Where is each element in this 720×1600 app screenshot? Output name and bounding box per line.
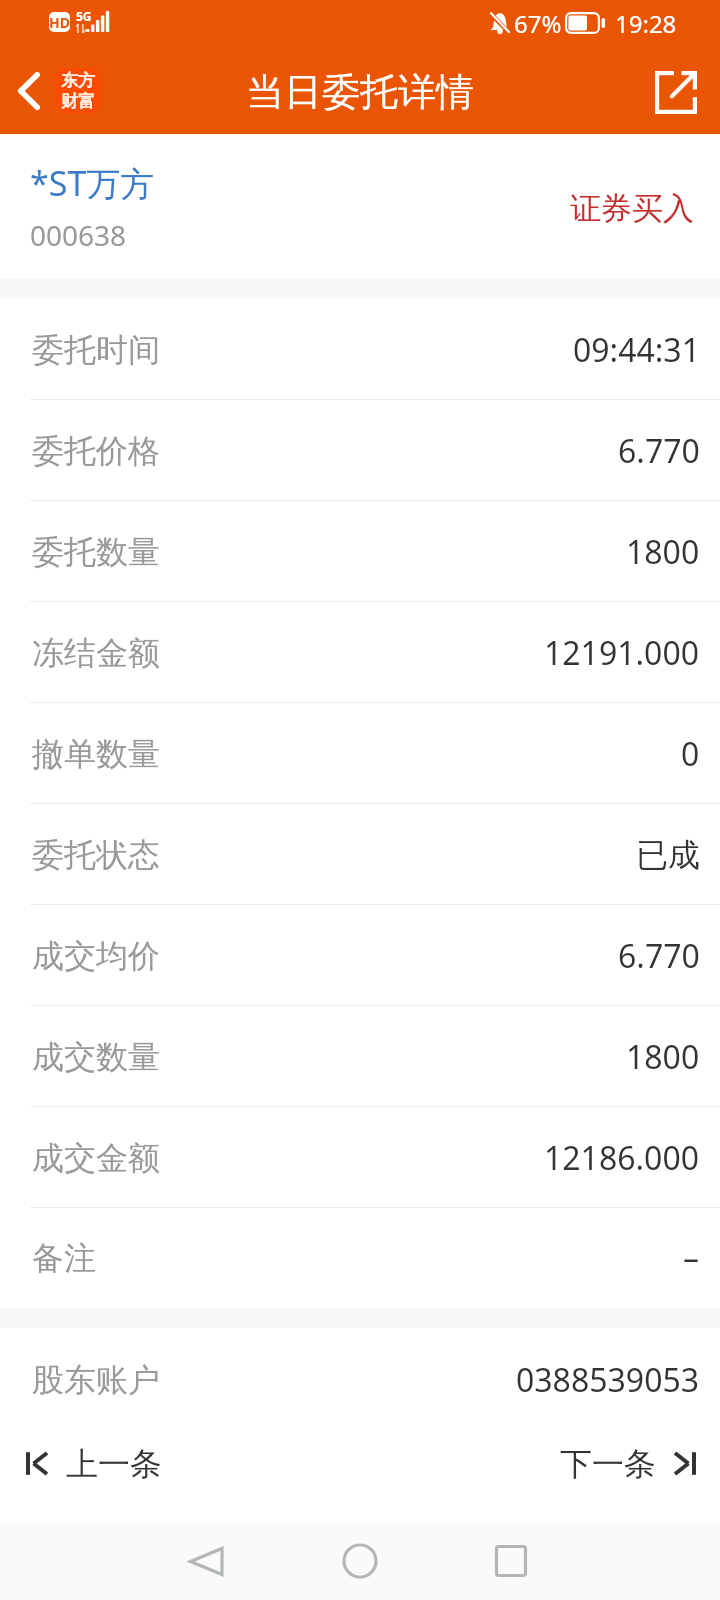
- button[interactable]: 委托价格: [0, 400, 720, 501]
- staticText: 成交数量: [32, 1037, 160, 1077]
- staticText: 6.770: [618, 429, 700, 473]
- staticText: 冻结金额: [32, 633, 160, 673]
- button[interactable]: 股东账户: [0, 1328, 720, 1432]
- staticText: 12186.000: [544, 1136, 700, 1180]
- staticText: 1800: [626, 1035, 700, 1079]
- button[interactable]: 委托数量: [0, 501, 720, 602]
- button[interactable]: *ST万方: [30, 160, 155, 206]
- button[interactable]: 证券买入: [570, 189, 694, 228]
- staticText: 12191.000: [544, 631, 700, 675]
- staticText: 6.770: [618, 934, 700, 978]
- button[interactable]: 委托状态: [0, 804, 720, 905]
- staticText: 成交金额: [32, 1138, 160, 1178]
- staticText: 19:28: [615, 7, 677, 40]
- staticText: 备注: [32, 1238, 96, 1278]
- button[interactable]: 成交金额: [0, 1107, 720, 1208]
- staticText: 委托时间: [32, 330, 160, 370]
- button[interactable]: 成交均价: [0, 905, 720, 1006]
- button[interactable]: 成交数量: [0, 1006, 720, 1107]
- staticText: 成交均价: [32, 936, 160, 976]
- staticText: 下一条: [560, 1444, 656, 1483]
- staticText: 0388539053: [516, 1358, 700, 1402]
- button[interactable]: 最近任务: [481, 1531, 541, 1591]
- staticText: 0: [681, 732, 700, 776]
- button[interactable]: 主页: [330, 1531, 390, 1591]
- button[interactable]: 分享: [641, 57, 720, 128]
- staticText: 1800: [626, 530, 700, 574]
- button[interactable]: 返回: [175, 1531, 235, 1591]
- staticText: 当日委托详情: [246, 68, 474, 116]
- staticText: 委托数量: [32, 532, 160, 572]
- staticText: 股东账户: [32, 1360, 160, 1400]
- button[interactable]: 下一条: [552, 1432, 704, 1495]
- staticText: –: [683, 1236, 700, 1280]
- button[interactable]: 返回: [0, 60, 109, 125]
- staticText: HD: [49, 13, 70, 32]
- staticText: 000638: [30, 216, 127, 254]
- button[interactable]: 委托时间: [0, 299, 720, 400]
- staticText: 5G: [76, 8, 92, 24]
- button[interactable]: 撤单数量: [0, 703, 720, 804]
- staticText: 财富: [61, 91, 95, 112]
- staticText: 上一条: [66, 1444, 162, 1483]
- button[interactable]: 备注: [0, 1208, 720, 1308]
- staticText: 委托状态: [32, 835, 160, 875]
- staticText: 已成: [636, 835, 700, 875]
- staticText: 09:44:31: [573, 328, 700, 372]
- button[interactable]: 冻结金额: [0, 602, 720, 703]
- staticText: 东方: [61, 70, 95, 91]
- button[interactable]: 上一条: [18, 1432, 170, 1495]
- staticText: 委托价格: [32, 431, 160, 471]
- staticText: 撤单数量: [32, 734, 160, 774]
- staticText: 67%: [514, 7, 562, 40]
